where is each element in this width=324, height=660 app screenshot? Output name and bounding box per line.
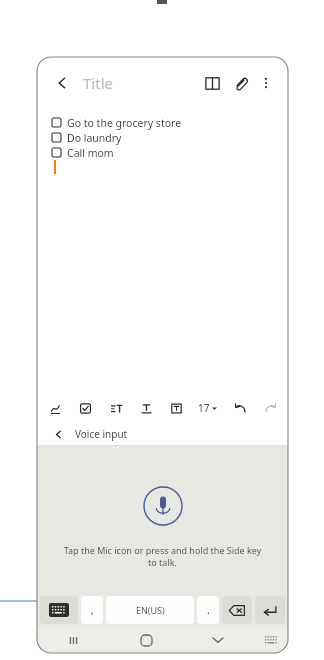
button[interactable]: Backspace bbox=[222, 596, 252, 624]
button[interactable]: Back bbox=[47, 423, 69, 445]
staticText: EN(US) bbox=[136, 604, 165, 616]
staticText: Call mom bbox=[67, 146, 114, 160]
button[interactable]: Call mom bbox=[52, 145, 288, 160]
button[interactable]: Do laundry bbox=[52, 130, 288, 145]
staticText: Do laundry bbox=[67, 131, 122, 145]
button[interactable]: Go to the grocery store bbox=[52, 115, 288, 130]
button[interactable]: Keyboard bbox=[254, 627, 288, 653]
button[interactable]: Attach bbox=[226, 69, 254, 97]
staticText: Tap the Mic icon or press and hold the S… bbox=[59, 544, 266, 568]
button[interactable]: Home bbox=[110, 627, 182, 653]
button[interactable]: Handwriting bbox=[45, 398, 65, 418]
button[interactable]: 17 bbox=[196, 401, 219, 415]
button[interactable]: More options bbox=[254, 71, 278, 95]
button[interactable]: Recent apps bbox=[37, 627, 110, 653]
button[interactable]: Switch keyboard bbox=[40, 596, 78, 624]
button[interactable]: Undo bbox=[230, 398, 250, 418]
button[interactable]: Reading view bbox=[198, 69, 226, 97]
staticText: Title bbox=[83, 73, 113, 93]
button[interactable]: Redo bbox=[260, 398, 280, 418]
button[interactable]: Text format bbox=[136, 398, 156, 418]
staticText: , bbox=[91, 603, 94, 617]
button[interactable]: EN(US) bbox=[106, 596, 194, 624]
button[interactable]: Text box bbox=[166, 398, 186, 418]
button[interactable]: . bbox=[197, 596, 219, 624]
staticText: Go to the grocery store bbox=[67, 116, 182, 130]
button[interactable]: Enter bbox=[255, 596, 285, 624]
button[interactable]: , bbox=[81, 596, 103, 624]
staticText: . bbox=[207, 603, 210, 617]
button[interactable]: Checklist bbox=[75, 398, 95, 418]
button[interactable]: Start voice input bbox=[143, 486, 183, 526]
staticText: Voice input bbox=[75, 427, 128, 441]
staticText: 17 bbox=[198, 401, 210, 415]
button[interactable]: Paragraph style bbox=[106, 398, 126, 418]
button[interactable]: Back bbox=[47, 68, 77, 98]
button[interactable]: Hide keyboard bbox=[182, 627, 254, 653]
